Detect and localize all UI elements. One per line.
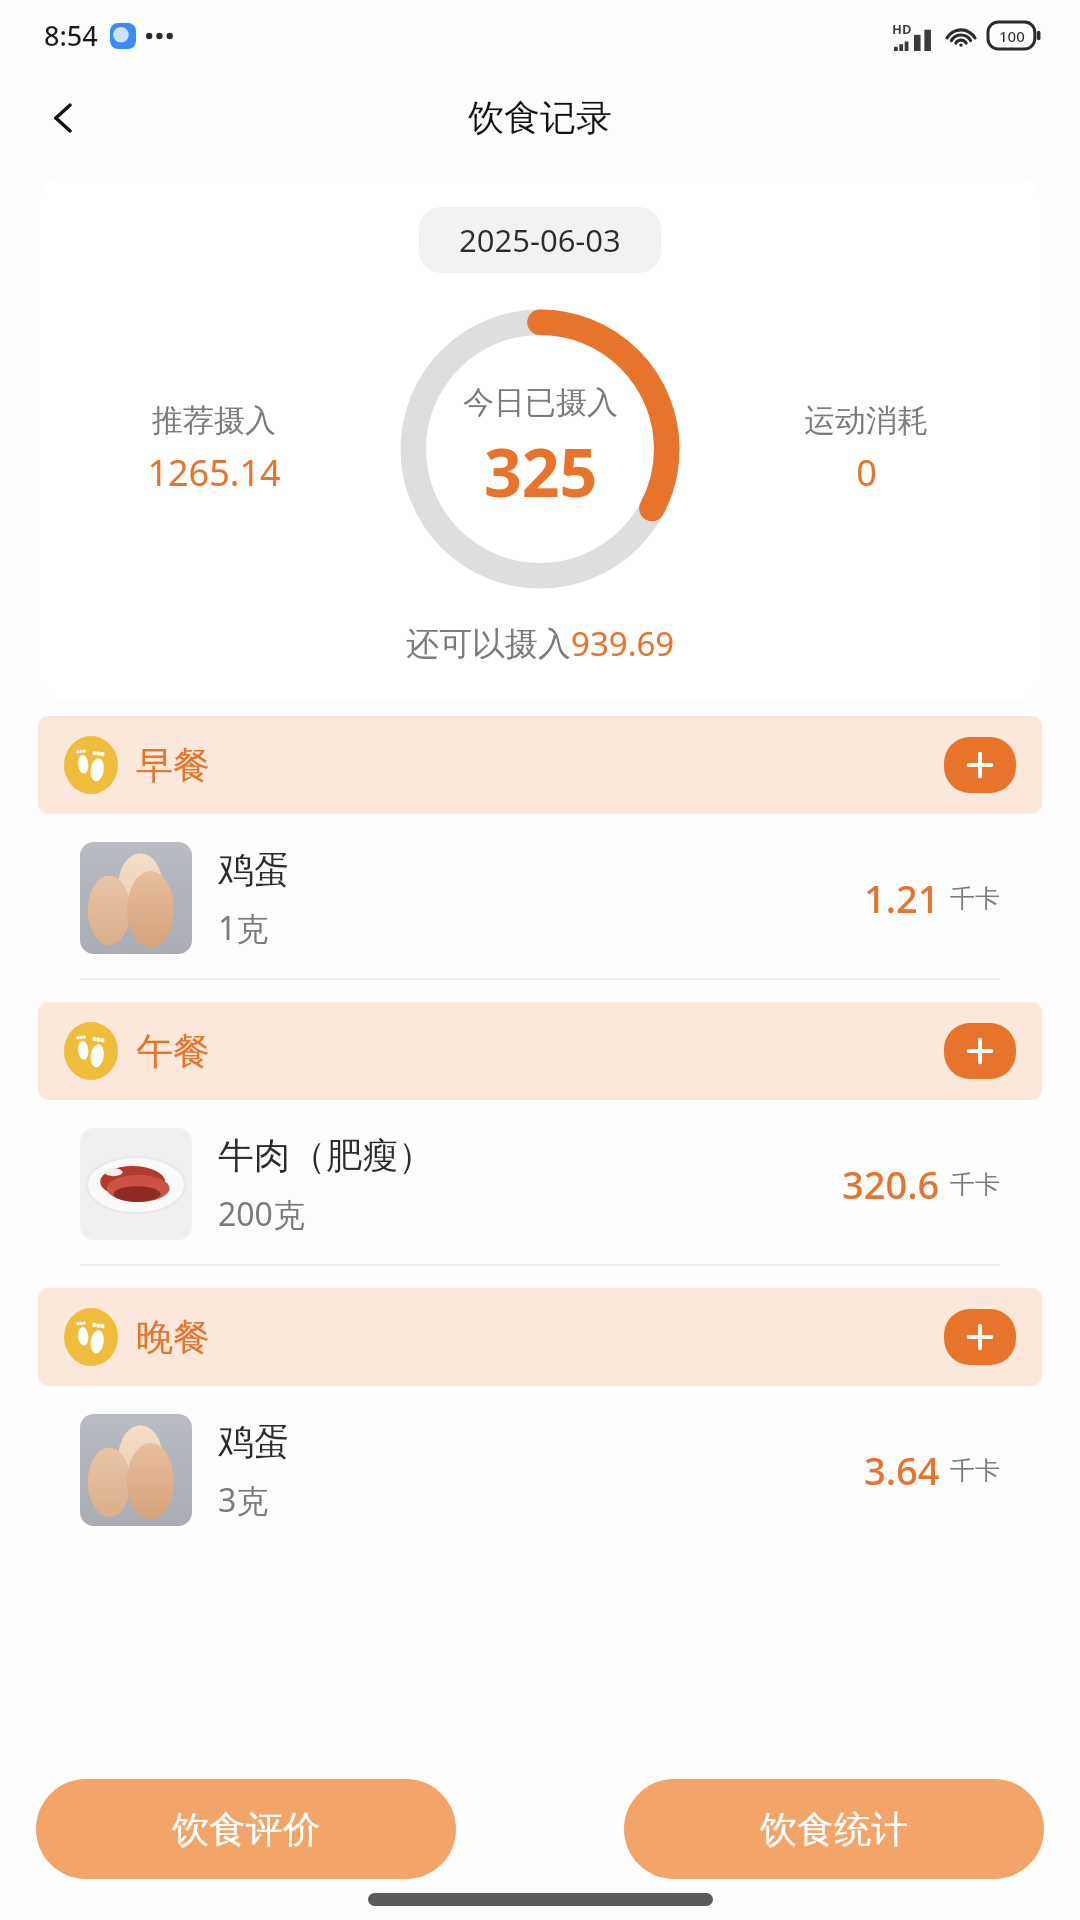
staticText: 鸡蛋: [218, 847, 290, 892]
staticText: 1克: [218, 906, 269, 950]
button[interactable]: 2025-06-03: [419, 207, 661, 273]
button[interactable]: 晚餐: [38, 1288, 1042, 1386]
button[interactable]: Add food to 晚餐: [944, 1309, 1016, 1365]
staticText: 320.6: [842, 1158, 940, 1210]
staticText: 牛肉（肥瘦）: [218, 1133, 434, 1178]
staticText: 1.21: [864, 872, 940, 924]
staticText: 推荐摄入: [152, 401, 276, 440]
staticText: 千卡: [950, 1169, 1000, 1200]
button[interactable]: Back: [28, 82, 100, 154]
staticText: 午餐: [136, 1028, 210, 1075]
button[interactable]: 鸡蛋: [0, 1386, 1080, 1550]
button[interactable]: 饮食评价: [36, 1779, 456, 1879]
button[interactable]: 牛肉（肥瘦）: [0, 1100, 1080, 1266]
staticText: 3克: [218, 1478, 269, 1522]
button[interactable]: 午餐: [38, 1002, 1042, 1100]
button[interactable]: Add food to 午餐: [944, 1023, 1016, 1079]
staticText: 3.64: [864, 1444, 940, 1496]
staticText: 晚餐: [136, 1314, 210, 1361]
staticText: 饮食评价: [172, 1806, 320, 1853]
staticText: 饮食记录: [468, 95, 612, 140]
staticText: 8:54: [44, 17, 98, 54]
button[interactable]: 早餐: [38, 716, 1042, 814]
staticText: 鸡蛋: [218, 1419, 290, 1464]
staticText: 939.69: [571, 621, 675, 666]
staticText: 1265.14: [147, 448, 281, 497]
button[interactable]: 鸡蛋: [0, 814, 1080, 980]
staticText: 325: [484, 426, 598, 516]
button[interactable]: 饮食统计: [624, 1779, 1044, 1879]
staticText: 100: [999, 26, 1025, 46]
staticText: 今日已摄入: [463, 383, 618, 422]
staticText: 千卡: [950, 883, 1000, 914]
staticText: 早餐: [136, 742, 210, 789]
staticText: HD: [892, 20, 912, 38]
staticText: 0: [856, 448, 877, 497]
staticText: 运动消耗: [804, 401, 928, 440]
staticText: 2025-06-03: [459, 219, 621, 261]
staticText: 千卡: [950, 1455, 1000, 1486]
staticText: 还可以摄入: [406, 623, 571, 665]
staticText: 饮食统计: [760, 1806, 908, 1853]
button[interactable]: Add food to 早餐: [944, 737, 1016, 793]
staticText: 200克: [218, 1192, 305, 1236]
